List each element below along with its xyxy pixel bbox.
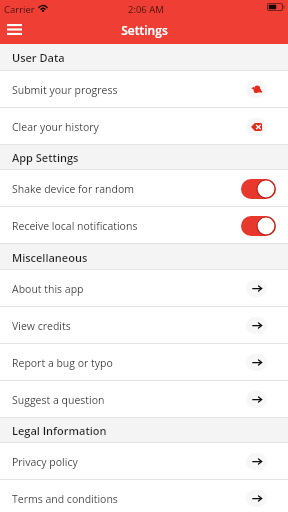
- staticText: Legal Information: [12, 423, 107, 438]
- staticText: Terms and conditions: [12, 492, 118, 506]
- staticText: Privacy policy: [12, 455, 78, 469]
- staticText: Report a bug or typo: [12, 356, 113, 370]
- staticText: Submit your progress: [12, 83, 118, 97]
- staticText: Shake device for random: [12, 182, 134, 196]
- staticText: Clear your history: [12, 120, 99, 134]
- staticText: Settings: [121, 22, 168, 38]
- button[interactable]: Open navigation menu: [0, 20, 28, 39]
- button[interactable]: Receive local notifications: [0, 207, 288, 244]
- staticText: Receive local notifications: [12, 219, 138, 233]
- button[interactable]: Privacy policy: [0, 443, 288, 480]
- staticText: Carrier: [4, 3, 35, 16]
- button[interactable]: About this app: [0, 270, 288, 307]
- button[interactable]: Shake device for random: [0, 170, 288, 207]
- button[interactable]: Report a bug or typo: [0, 344, 288, 381]
- staticText: Miscellaneous: [12, 250, 88, 265]
- button[interactable]: Terms and conditions: [0, 480, 288, 512]
- button[interactable]: View credits: [0, 307, 288, 344]
- staticText: User Data: [12, 50, 65, 65]
- staticText: 2:06 AM: [128, 3, 164, 16]
- staticText: About this app: [12, 282, 84, 296]
- button[interactable]: Suggest a question: [0, 381, 288, 418]
- button[interactable]: Submit your progress: [0, 71, 288, 108]
- staticText: App Settings: [12, 150, 79, 165]
- staticText: View credits: [12, 319, 71, 333]
- staticText: Suggest a question: [12, 393, 105, 407]
- button[interactable]: Clear your history: [0, 108, 288, 145]
